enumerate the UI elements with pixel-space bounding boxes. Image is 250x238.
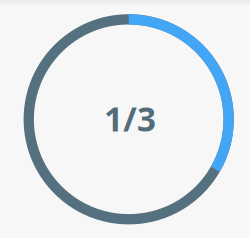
- staticText: 1/3: [104, 96, 156, 141]
